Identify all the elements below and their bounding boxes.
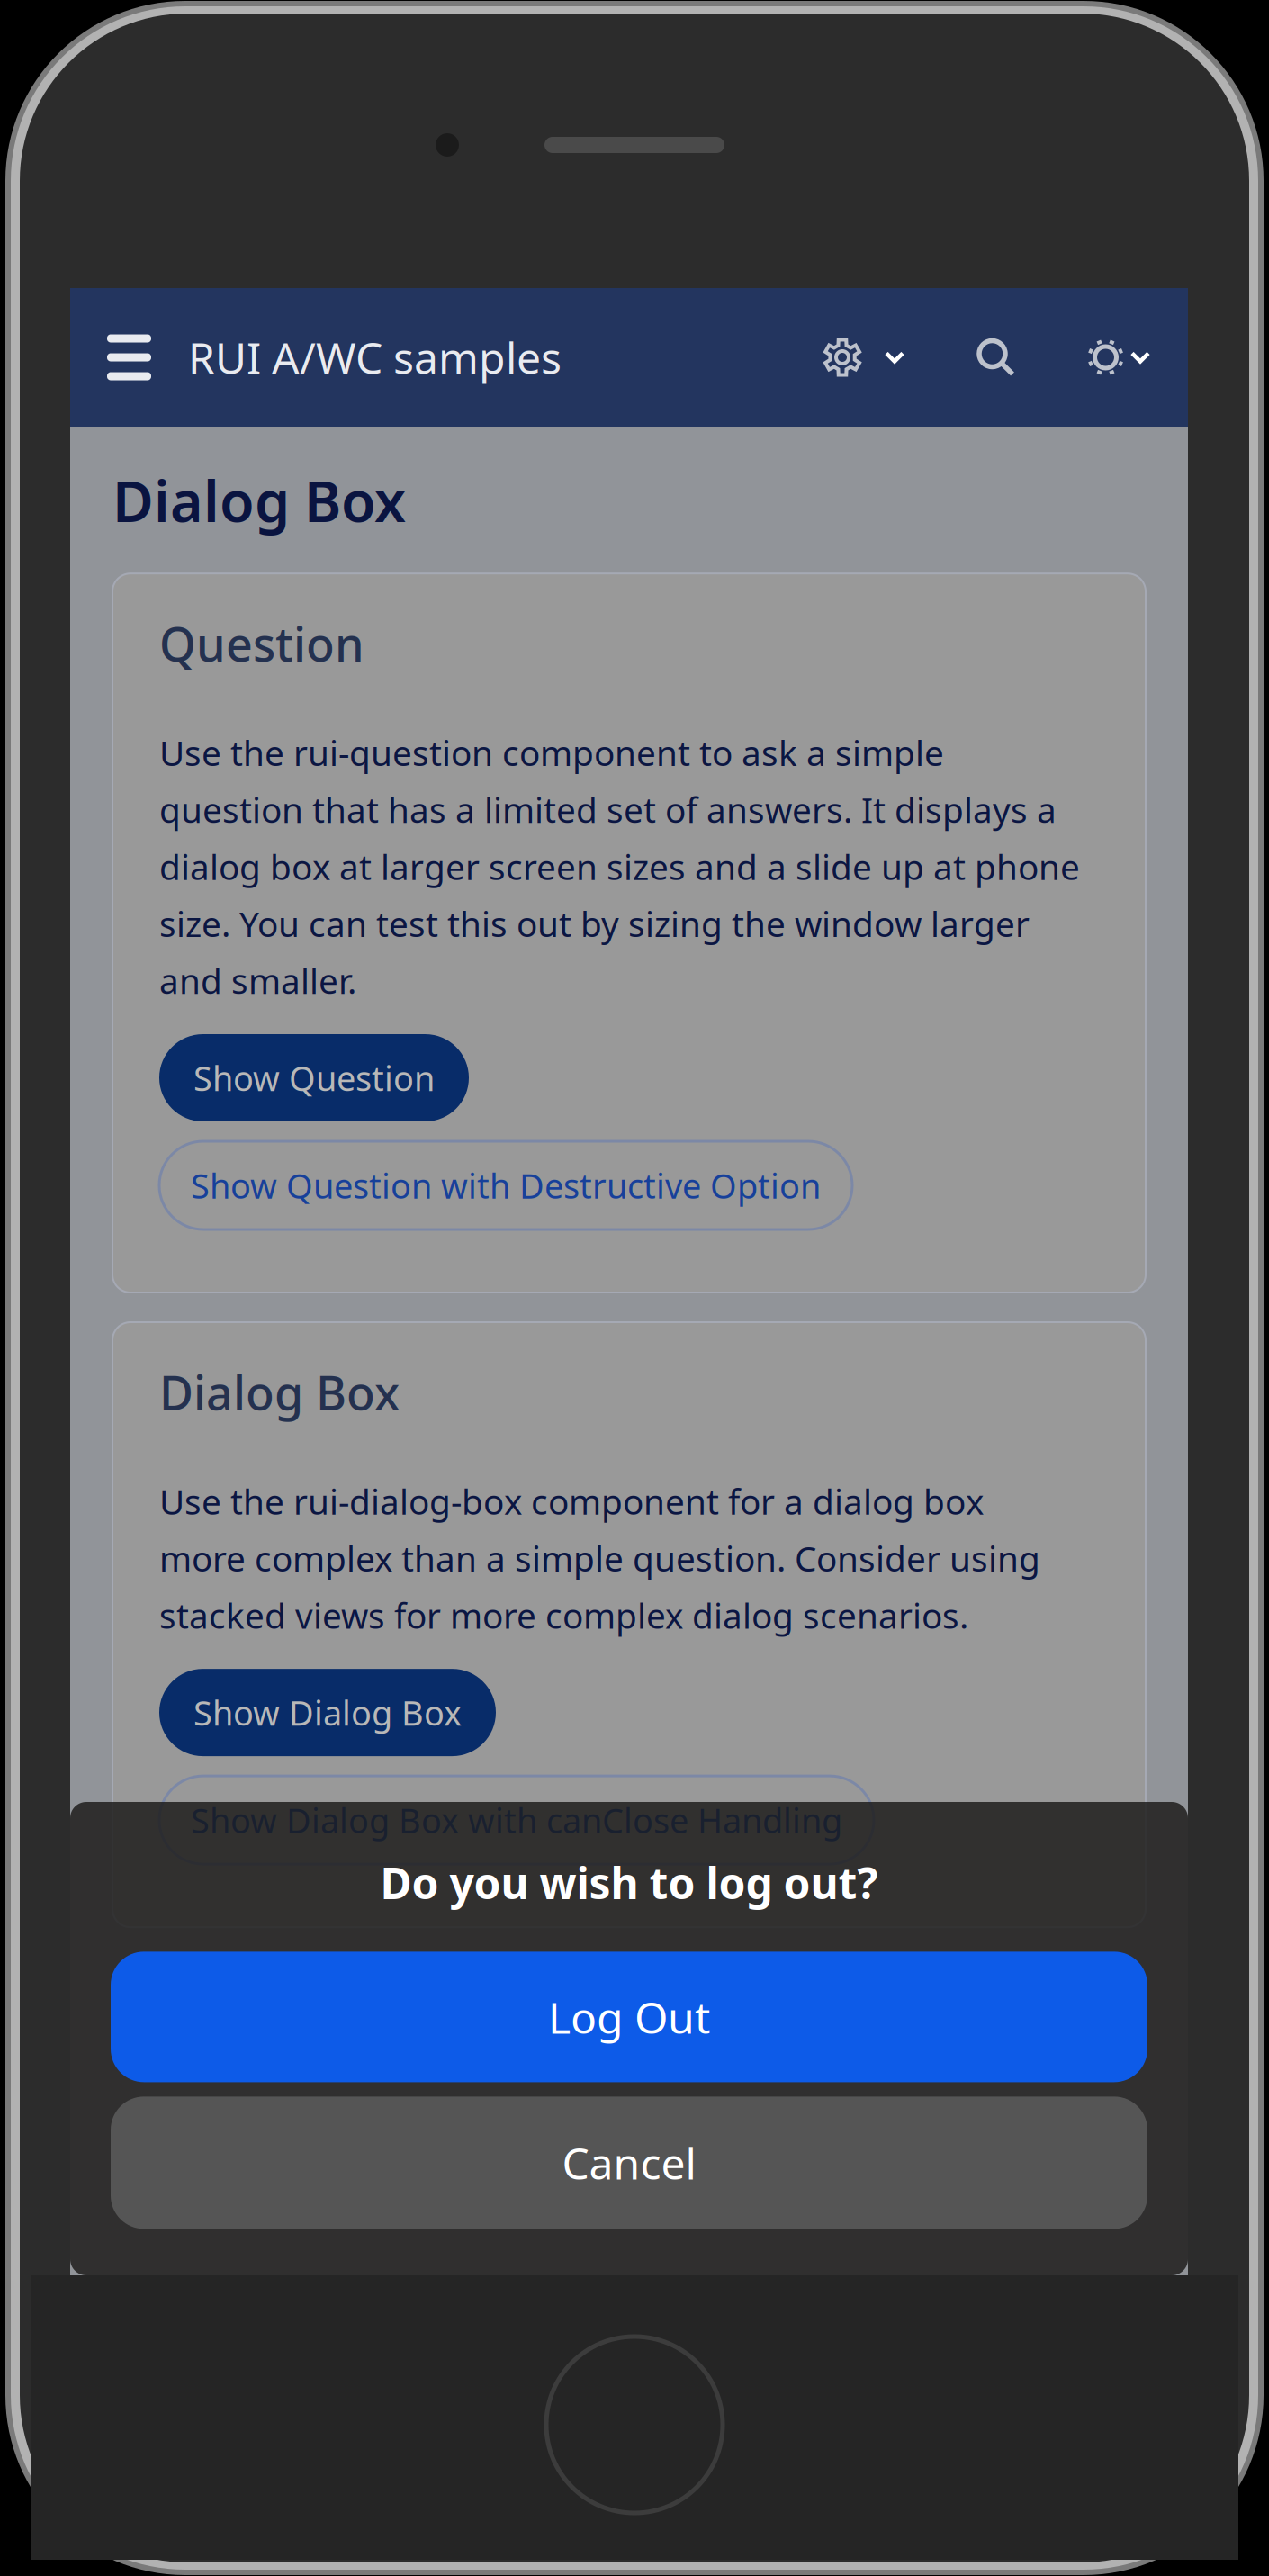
staticText: Do you wish to log out? bbox=[380, 1854, 878, 1911]
staticText: Use the rui-question component to ask a … bbox=[159, 729, 1080, 1004]
staticText: Use the rui-dialog-box component for a d… bbox=[159, 1478, 1040, 1638]
staticText: Dialog Box bbox=[112, 463, 406, 538]
staticText: Show Dialog Box with canClose Handling bbox=[191, 1797, 842, 1843]
staticText: Question bbox=[159, 612, 364, 674]
button[interactable]: Show Dialog Box bbox=[159, 1669, 496, 1756]
button[interactable]: Cancel bbox=[111, 2097, 1147, 2229]
button[interactable]: Menu bbox=[107, 288, 151, 427]
button[interactable]: Show Question with Destructive Option bbox=[159, 1141, 852, 1229]
staticText: Show Question with Destructive Option bbox=[191, 1162, 821, 1209]
button[interactable]: Log Out bbox=[111, 1952, 1147, 2082]
button[interactable]: Appearance bbox=[1086, 288, 1150, 427]
staticText: Log Out bbox=[548, 1988, 710, 2046]
button[interactable]: Settings menu bbox=[823, 288, 904, 427]
button[interactable]: Show Dialog Box with canClose Handling bbox=[159, 1776, 874, 1864]
button[interactable]: Show Question bbox=[159, 1034, 469, 1121]
button[interactable]: Search bbox=[976, 288, 1015, 427]
staticText: Show Dialog Box bbox=[193, 1689, 462, 1736]
staticText: Show Question bbox=[193, 1055, 435, 1101]
staticText: Cancel bbox=[562, 2134, 696, 2191]
staticText: RUI A/WC samples bbox=[188, 329, 562, 386]
staticText: Dialog Box bbox=[159, 1361, 400, 1423]
